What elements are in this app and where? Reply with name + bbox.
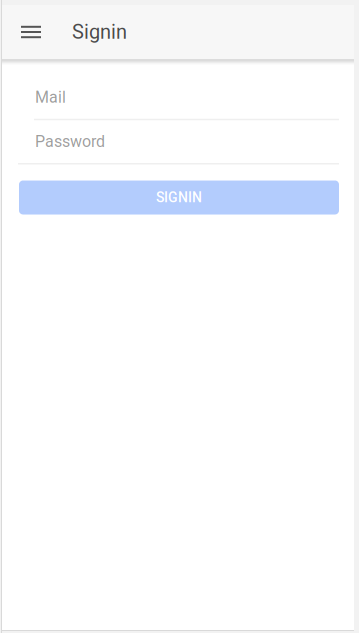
staticText: Signin: [72, 20, 127, 44]
staticText: Password: [35, 132, 105, 151]
staticText: Mail: [35, 88, 66, 107]
button[interactable]: SIGNIN: [19, 180, 339, 214]
staticText: SIGNIN: [156, 189, 202, 206]
button[interactable]: Menu: [11, 12, 51, 52]
